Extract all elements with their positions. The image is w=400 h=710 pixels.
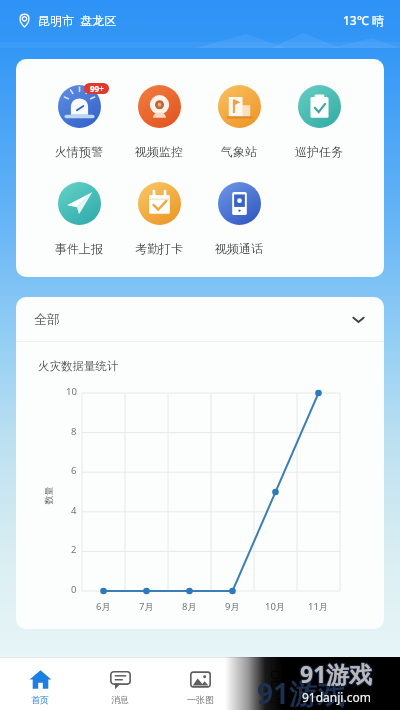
staticText: 91游戏 <box>257 674 346 710</box>
staticText: 巡护任务 <box>295 144 343 159</box>
staticText: 一张图 <box>187 694 214 705</box>
button[interactable]: 工作台 <box>240 664 320 705</box>
staticText: 工作台 <box>267 694 294 705</box>
staticText: 6 <box>71 464 77 477</box>
staticText: 2 <box>71 543 77 556</box>
staticText: 消息 <box>111 694 129 705</box>
staticText: 昆明市 盘龙区 <box>38 12 117 28</box>
button[interactable]: 巡护任务 <box>279 80 359 159</box>
staticText: 全部 <box>34 311 60 327</box>
staticText: 13℃ 晴 <box>343 12 384 28</box>
button[interactable]: 气象站 <box>199 80 279 159</box>
staticText: 91游戏 <box>300 659 373 690</box>
staticText: 7月 <box>139 600 154 613</box>
staticText: 10 <box>66 385 77 398</box>
staticText: 火灾数据量统计 <box>38 359 119 373</box>
staticText: 91游戏 <box>301 657 374 688</box>
staticText: 气象站 <box>221 144 257 159</box>
staticText: 4 <box>71 504 77 517</box>
staticText: 91游戏 <box>299 659 372 690</box>
button[interactable]: Location <box>14 10 34 30</box>
staticText: 91游戏 <box>299 657 372 688</box>
staticText: 9月 <box>225 600 240 613</box>
staticText: 考勤打卡 <box>135 241 183 256</box>
staticText: 11月 <box>308 600 329 613</box>
staticText: 10月 <box>265 600 286 613</box>
staticText: 91游戏 <box>299 658 372 689</box>
staticText: 91游戏 <box>301 659 374 690</box>
button[interactable]: 全部 <box>16 297 384 341</box>
other: Expand <box>351 312 366 327</box>
staticText: 8 <box>71 425 77 438</box>
staticText: 我的 <box>351 694 369 705</box>
button[interactable]: 我的 <box>320 664 400 705</box>
staticText: 8月 <box>182 600 197 613</box>
staticText: 数量 <box>42 486 53 504</box>
button[interactable]: 事件上报 <box>38 177 119 256</box>
staticText: 91游戏 <box>301 658 374 689</box>
staticText: 99+ <box>90 83 104 94</box>
staticText: 91danji.com <box>302 689 371 705</box>
staticText: 视频通话 <box>215 241 263 256</box>
staticText: 0 <box>71 583 77 596</box>
button[interactable]: 消息 <box>80 664 160 705</box>
button[interactable]: 视频通话 <box>199 177 279 256</box>
staticText: 6月 <box>96 600 111 613</box>
staticText: 91游戏 <box>300 657 373 688</box>
staticText: 91游戏 <box>300 658 373 689</box>
button[interactable]: 首页 <box>0 664 80 705</box>
staticText: 首页 <box>31 694 49 705</box>
button[interactable]: 一张图 <box>160 664 240 705</box>
button[interactable]: 视频监控 <box>119 80 199 159</box>
staticText: 火情预警 <box>55 144 103 159</box>
button[interactable]: 99+ <box>38 80 119 159</box>
button[interactable]: 考勤打卡 <box>119 177 199 256</box>
staticText: 视频监控 <box>135 144 183 159</box>
staticText: 事件上报 <box>55 241 103 256</box>
